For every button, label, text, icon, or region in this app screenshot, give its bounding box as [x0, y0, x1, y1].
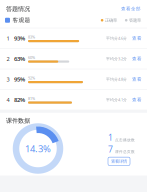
staticText: 3: [6, 75, 9, 83]
staticText: 81%: [28, 96, 35, 101]
staticText: 4: [6, 96, 9, 104]
staticText: 平均分4.6分: [106, 36, 127, 41]
staticText: 查看: [132, 56, 142, 62]
button[interactable]: 查看: [127, 35, 142, 41]
button[interactable]: 查看全部: [121, 6, 141, 12]
staticText: 客观题: [12, 17, 30, 24]
staticText: 平均分4.8分: [106, 77, 127, 82]
staticText: 95%: [14, 75, 25, 83]
staticText: 7: [108, 143, 113, 155]
staticText: 查看全部: [121, 6, 141, 12]
staticText: 课件总页数: [115, 149, 135, 154]
staticText: 83%: [28, 34, 35, 39]
staticText: 查看: [132, 97, 142, 103]
staticText: 1: [6, 34, 9, 42]
staticText: 平均分4.1分: [106, 97, 127, 102]
staticText: 2: [6, 55, 9, 63]
staticText: 查看: [132, 76, 142, 82]
staticText: 点击播放数: [115, 138, 135, 142]
button[interactable]: 查看: [127, 76, 142, 82]
staticText: 课件数据: [6, 117, 30, 124]
staticText: 63%: [14, 55, 25, 63]
staticText: 平均分3.2分: [106, 56, 127, 61]
button[interactable]: 查看: [127, 56, 142, 62]
staticText: 正确率: [105, 18, 117, 23]
staticText: 答题情况: [6, 5, 30, 13]
button[interactable]: 查看: [127, 97, 142, 103]
staticText: 查看详情: [111, 159, 127, 164]
staticText: 92%: [28, 75, 35, 80]
staticText: 答题率: [129, 18, 141, 23]
staticText: 14.3%: [25, 142, 51, 155]
staticText: 93%: [14, 34, 25, 42]
staticText: 60%: [28, 55, 35, 60]
staticText: 1: [108, 131, 113, 143]
button[interactable]: 查看详情: [108, 157, 130, 165]
staticText: 查看: [132, 35, 142, 41]
staticText: 82%: [14, 96, 25, 104]
